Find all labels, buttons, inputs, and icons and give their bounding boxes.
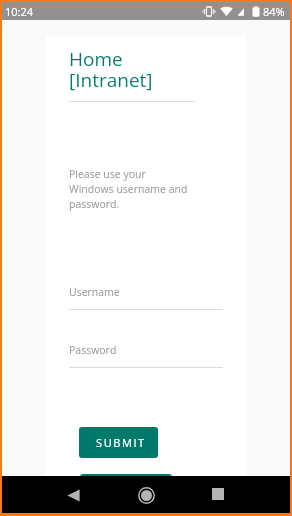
- button[interactable]: Home: [130, 478, 162, 510]
- other: Vibrate mode: [202, 6, 216, 17]
- staticText: Please use your Windows username and pas…: [69, 167, 188, 211]
- staticText: Home [Intranet]: [69, 46, 153, 93]
- staticText: 10:24: [5, 4, 34, 19]
- staticText: Password: [69, 343, 117, 357]
- other: Battery: [252, 6, 260, 17]
- button[interactable]: [80, 474, 172, 484]
- button[interactable]: Back: [57, 479, 90, 511]
- other: Mobile signal: [236, 8, 245, 16]
- button[interactable]: Username: [69, 285, 223, 310]
- button[interactable]: SUBMIT: [79, 427, 158, 458]
- staticText: SUBMIT: [96, 435, 146, 450]
- other: Wi-Fi: [220, 7, 233, 16]
- staticText: 84%: [263, 4, 285, 19]
- button[interactable]: Password: [69, 343, 223, 368]
- staticText: Username: [69, 285, 120, 299]
- button[interactable]: Recent apps: [202, 478, 234, 510]
